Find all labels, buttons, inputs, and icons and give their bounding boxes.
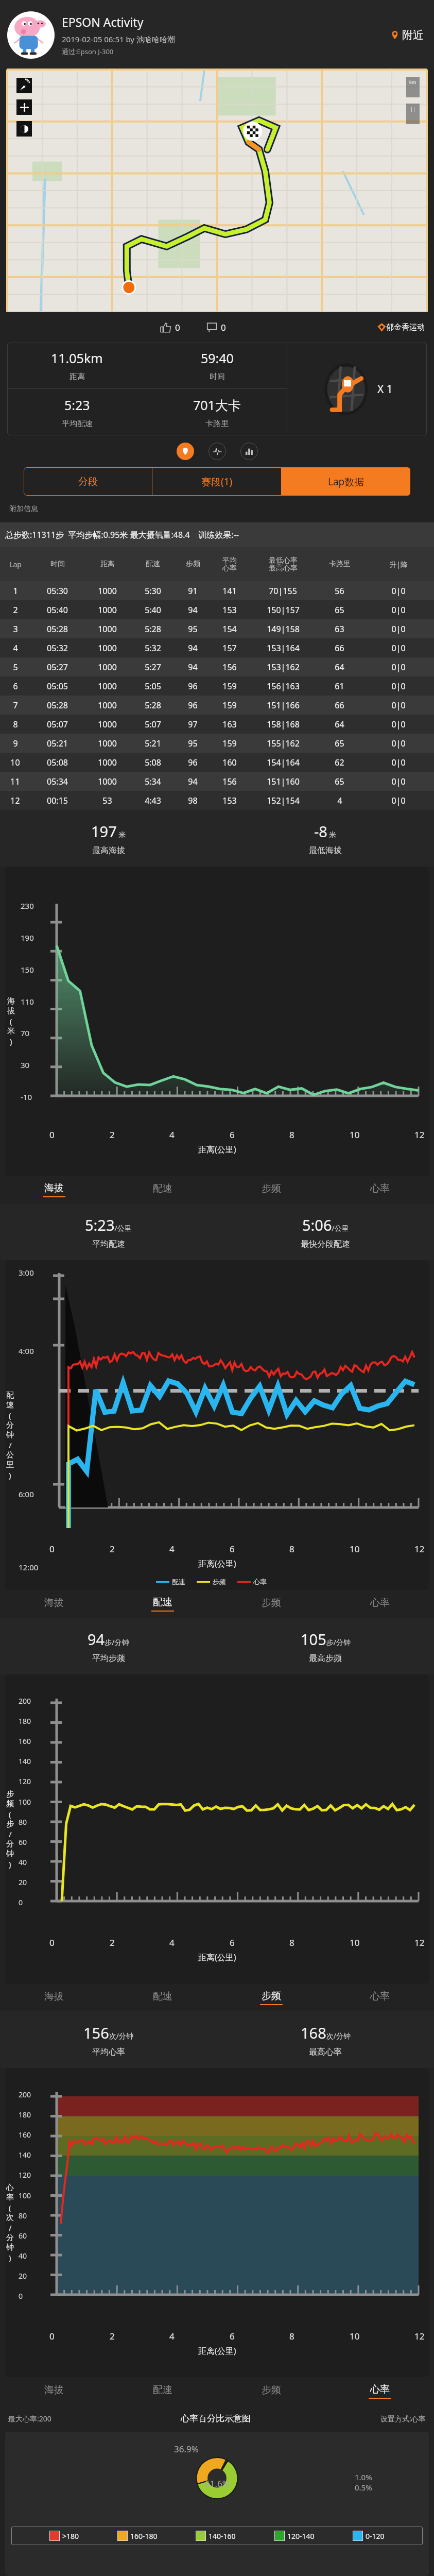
- button[interactable]: GPS: [16, 78, 32, 93]
- staticText: 96: [188, 700, 198, 711]
- staticText: 156|163: [267, 681, 300, 692]
- staticText: 7: [13, 700, 18, 711]
- button[interactable]: Map: [177, 443, 194, 460]
- button[interactable]: 心率: [325, 2377, 434, 2405]
- staticText: 平均 心率: [222, 556, 237, 572]
- button[interactable]: 7: [0, 696, 434, 715]
- button[interactable]: 心率: [325, 1176, 434, 1204]
- staticText: 8: [289, 1543, 294, 1555]
- button[interactable]: 11: [0, 772, 434, 791]
- staticText: 4:00: [19, 1346, 34, 1356]
- staticText: /: [9, 1829, 12, 1839]
- button[interactable]: 步频: [217, 2377, 325, 2405]
- button[interactable]: 2: [0, 600, 434, 619]
- staticText: 3: [13, 623, 18, 635]
- staticText: 11.05km: [51, 349, 103, 367]
- staticText: 平均心率: [92, 2047, 125, 2057]
- staticText: 8: [289, 1937, 294, 1948]
- button[interactable]: Layers: [16, 121, 32, 137]
- staticText: 80: [19, 1817, 27, 1827]
- button[interactable]: km: [406, 77, 420, 97]
- button[interactable]: 配速: [108, 1176, 217, 1204]
- staticText: 米: [7, 1026, 15, 1036]
- button[interactable]: 步频: [217, 1176, 325, 1204]
- button[interactable]: 配速: [108, 1984, 217, 2011]
- staticText: 53: [102, 795, 112, 806]
- button[interactable]: 6: [0, 676, 434, 696]
- staticText: 158|168: [267, 719, 300, 730]
- staticText: 步频: [262, 2384, 281, 2396]
- staticText: 153|164: [267, 642, 300, 654]
- staticText: 1000: [98, 681, 117, 692]
- button[interactable]: 步频: [217, 1590, 325, 1618]
- button[interactable]: 9: [0, 734, 434, 753]
- button[interactable]: 8: [0, 715, 434, 734]
- button[interactable]: 4: [0, 638, 434, 657]
- staticText: 180: [19, 1716, 31, 1726]
- button[interactable]: 赛段(1): [152, 467, 281, 496]
- staticText: 80: [19, 2211, 27, 2221]
- button[interactable]: 海拔: [0, 1984, 108, 2011]
- staticText: 70|155: [269, 585, 297, 597]
- button[interactable]: Charts: [240, 443, 258, 460]
- button[interactable]: 5: [0, 657, 434, 676]
- staticText: 12: [414, 2330, 425, 2342]
- button[interactable]: 10: [0, 753, 434, 772]
- button[interactable]: 配速: [108, 2377, 217, 2405]
- staticText: 70: [21, 1028, 30, 1038]
- button[interactable]: Heart rate: [209, 443, 226, 460]
- staticText: 最大心率:200: [8, 2414, 51, 2424]
- button[interactable]: 海拔: [0, 1590, 108, 1618]
- staticText: 120: [19, 2170, 31, 2180]
- staticText: 5:28: [145, 623, 161, 635]
- button[interactable]: 步频: [217, 1984, 325, 2011]
- button[interactable]: 分段: [24, 467, 152, 496]
- staticText: 平均步频: [92, 1653, 125, 1664]
- button[interactable]: 0: [159, 319, 182, 335]
- staticText: 距离(公里): [198, 1144, 236, 1155]
- staticText: km: [409, 79, 416, 85]
- staticText: 200: [19, 2090, 31, 2099]
- staticText: 里: [6, 1460, 14, 1470]
- staticText: 平均配速: [92, 1239, 125, 1249]
- staticText: 160: [19, 1736, 31, 1746]
- staticText: 159: [222, 700, 237, 711]
- staticText: 96: [188, 757, 198, 768]
- button[interactable]: 1: [0, 581, 434, 600]
- button[interactable]: 海拔: [0, 1176, 108, 1204]
- staticText: 步频: [186, 560, 200, 569]
- staticText: 40: [19, 2251, 27, 2261]
- staticText: 8: [13, 719, 18, 730]
- staticText: 赛段(1): [201, 475, 233, 488]
- staticText: 153: [222, 604, 237, 616]
- button[interactable]: 心率: [325, 1590, 434, 1618]
- staticText: 61.6%: [205, 2478, 230, 2489]
- staticText: 05:28: [47, 700, 68, 711]
- staticText: 2: [13, 604, 18, 616]
- staticText: 40: [19, 1857, 27, 1867]
- button[interactable]: Lap数据: [282, 467, 410, 496]
- staticText: 海拔: [44, 1990, 64, 2003]
- staticText: 05:34: [47, 776, 68, 787]
- button[interactable]: 3: [0, 619, 434, 638]
- button[interactable]: 心率: [325, 1984, 434, 2011]
- staticText: 频: [6, 1799, 14, 1809]
- staticText: 05:40: [47, 604, 68, 616]
- button[interactable]: Pan: [16, 99, 32, 115]
- staticText: 卡路里: [205, 419, 229, 429]
- staticText: 156: [222, 776, 237, 787]
- button[interactable]: 附近: [388, 25, 427, 45]
- button[interactable]: 0: [205, 319, 228, 335]
- staticText: 91: [188, 585, 198, 597]
- staticText: ): [10, 1036, 12, 1046]
- button[interactable]: 配速: [108, 1590, 217, 1618]
- staticText: 步频: [262, 1990, 281, 2002]
- staticText: 60: [19, 2231, 27, 2241]
- button[interactable]: 海拔: [0, 2377, 108, 2405]
- staticText: 10: [350, 1129, 360, 1141]
- staticText: 5:23: [64, 396, 90, 414]
- staticText: 64: [335, 662, 344, 673]
- button[interactable]: 12: [0, 791, 434, 810]
- button[interactable]: ||: [406, 104, 420, 124]
- staticText: 2: [110, 1129, 115, 1141]
